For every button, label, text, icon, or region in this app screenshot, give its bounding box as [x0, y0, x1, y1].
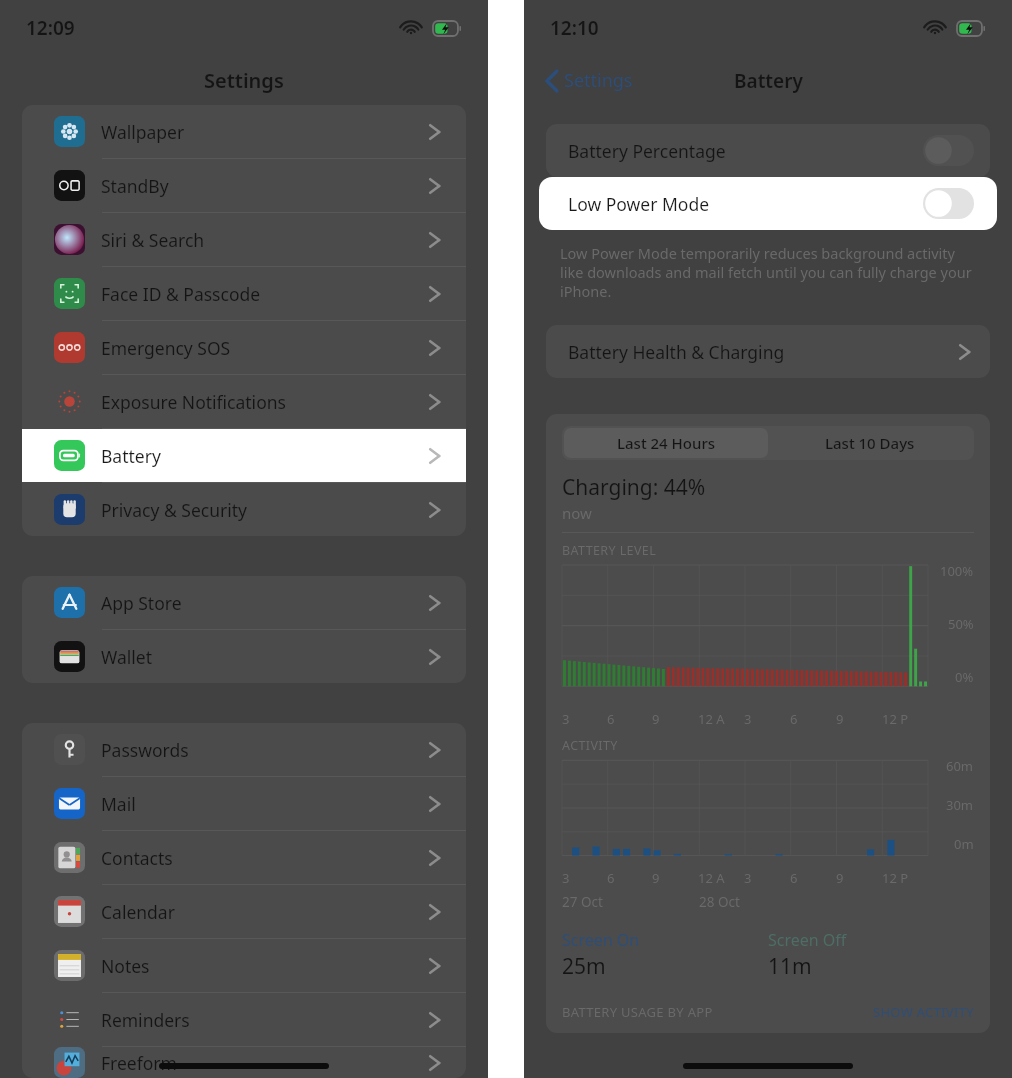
staticText: now [562, 503, 592, 523]
staticText: 12 P [882, 710, 909, 728]
button[interactable]: SHOW ACTIVITY [873, 1003, 974, 1021]
staticText: Exposure Notifications [101, 390, 286, 414]
staticText: 6 [607, 869, 615, 887]
button[interactable]: Contacts [22, 831, 466, 884]
staticText: 9 [652, 710, 660, 728]
staticText: Battery Health & Charging [568, 340, 785, 364]
staticText: 3 [744, 869, 752, 887]
button[interactable]: Calendar [22, 885, 466, 938]
staticText: 25m [562, 952, 606, 981]
staticText: Settings [204, 67, 284, 94]
staticText: 60m [946, 757, 974, 775]
button[interactable]: Mail [22, 777, 466, 830]
button[interactable]: Battery [22, 429, 466, 482]
staticText: Siri & Search [101, 228, 205, 252]
staticText: Last 10 Days [825, 433, 915, 453]
staticText: StandBy [101, 174, 169, 198]
staticText: 3 [562, 869, 570, 887]
staticText: Last 24 Hours [617, 433, 716, 453]
staticText: Freeform [101, 1051, 177, 1075]
staticText: 100% [940, 562, 974, 580]
staticText: 27 Oct [562, 893, 603, 911]
staticText: Contacts [101, 846, 173, 870]
staticText: ACTIVITY [562, 737, 618, 754]
staticText: Reminders [101, 1008, 190, 1032]
staticText: 9 [836, 710, 844, 728]
staticText: 9 [652, 869, 660, 887]
staticText: Calendar [101, 900, 175, 924]
button[interactable]: App Store [22, 576, 466, 629]
staticText: 3 [744, 710, 752, 728]
staticText: 50% [948, 615, 974, 633]
staticText: Emergency SOS [101, 336, 231, 360]
staticText: Battery [101, 444, 161, 468]
staticText: 11m [768, 952, 812, 981]
button[interactable]: Emergency SOS [22, 321, 466, 374]
staticText: Passwords [101, 738, 189, 762]
button[interactable]: Low Power Mode [539, 177, 997, 230]
staticText: 9 [836, 869, 844, 887]
staticText: 30m [946, 796, 974, 814]
staticText: Notes [101, 954, 150, 978]
staticText: 12 A [698, 710, 725, 728]
staticText: BATTERY USAGE BY APP [562, 1003, 713, 1021]
button[interactable]: Wallpaper [22, 105, 466, 158]
staticText: Low Power Mode temporarily reduces backg… [560, 243, 976, 301]
staticText: 6 [607, 710, 615, 728]
staticText: Wallet [101, 645, 152, 669]
staticText: 0m [954, 835, 974, 853]
staticText: App Store [101, 591, 182, 615]
button[interactable]: StandBy [22, 159, 466, 212]
staticText: 12:09 [26, 15, 75, 41]
button[interactable]: Freeform [22, 1047, 466, 1078]
staticText: 6 [790, 869, 798, 887]
staticText: Charging: 44% [562, 473, 706, 502]
staticText: SHOW ACTIVITY [873, 1003, 974, 1021]
button[interactable]: Privacy & Security [22, 483, 466, 536]
button[interactable]: Toggle switch [923, 188, 974, 219]
staticText: Face ID & Passcode [101, 282, 261, 306]
button[interactable]: Notes [22, 939, 466, 992]
staticText: Low Power Mode [568, 192, 710, 216]
button[interactable]: Battery Health & Charging [546, 325, 990, 378]
staticText: 12:10 [550, 15, 599, 41]
staticText: 12 P [882, 869, 909, 887]
staticText: Battery Percentage [568, 139, 726, 163]
button[interactable]: Exposure Notifications [22, 375, 466, 428]
staticText: Settings [564, 68, 633, 93]
staticText: 12 A [698, 869, 725, 887]
staticText: BATTERY LEVEL [562, 542, 657, 559]
staticText: 6 [790, 710, 798, 728]
button[interactable]: Wallet [22, 630, 466, 683]
button[interactable]: Battery Percentage [546, 124, 990, 177]
staticText: 3 [562, 710, 570, 728]
button[interactable]: Last 24 Hours [564, 428, 768, 458]
staticText: 28 Oct [699, 893, 740, 911]
button[interactable]: Reminders [22, 993, 466, 1046]
staticText: Privacy & Security [101, 498, 247, 522]
staticText: Screen On [562, 929, 640, 951]
staticText: 0% [955, 668, 974, 686]
button[interactable]: Toggle switch [923, 135, 974, 166]
button[interactable]: Passwords [22, 723, 466, 776]
button[interactable]: Face ID & Passcode [22, 267, 466, 320]
button[interactable]: Last 10 Days [768, 428, 972, 458]
staticText: Battery [734, 68, 803, 94]
button[interactable]: Settings [542, 64, 637, 97]
button[interactable]: Siri & Search [22, 213, 466, 266]
staticText: Mail [101, 792, 136, 816]
staticText: Wallpaper [101, 120, 185, 144]
staticText: Screen Off [768, 929, 847, 951]
